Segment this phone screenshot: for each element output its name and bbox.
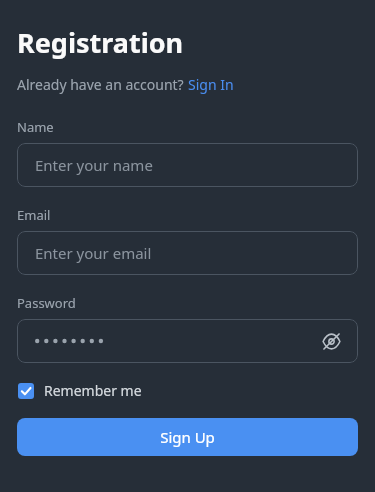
- staticText: Sign In: [188, 75, 234, 94]
- staticText: Enter your email: [35, 243, 152, 263]
- staticText: Remember me: [44, 381, 142, 400]
- staticText: Sign Up: [160, 427, 215, 447]
- button[interactable]: Hide password: [17, 319, 358, 363]
- button[interactable]: Enter your name: [17, 143, 358, 187]
- button[interactable]: Sign In: [188, 75, 234, 94]
- staticText: Registration: [17, 24, 184, 61]
- button[interactable]: Hide password: [318, 328, 344, 354]
- button[interactable]: Sign Up: [17, 418, 358, 456]
- button[interactable]: Enter your email: [17, 231, 358, 275]
- staticText: Enter your name: [35, 155, 153, 175]
- staticText: Email: [17, 206, 51, 224]
- staticText: Already have an account?: [17, 75, 188, 94]
- staticText: Name: [17, 118, 54, 136]
- button[interactable]: Remember me: [17, 377, 143, 404]
- staticText: Password: [17, 294, 76, 312]
